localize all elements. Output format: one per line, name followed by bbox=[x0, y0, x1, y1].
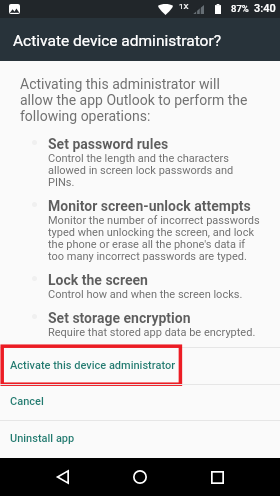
button[interactable]: Activate this device administrator bbox=[0, 348, 280, 384]
staticText: Control how and when the screen locks. bbox=[48, 288, 243, 300]
staticText: Monitor screen-unlock attempts bbox=[48, 196, 251, 214]
button[interactable]: Recent apps bbox=[197, 458, 238, 496]
staticText: Uninstall app bbox=[10, 432, 75, 445]
staticText: Set storage encryption bbox=[48, 308, 191, 326]
staticText: Lock the screen bbox=[48, 270, 148, 288]
staticText: Cancel bbox=[10, 395, 44, 408]
staticText: 1X bbox=[179, 2, 189, 11]
other: Screenshot captured bbox=[9, 4, 20, 14]
staticText: Monitor the number of incorrect password… bbox=[48, 214, 262, 262]
staticText: Require that stored app data be encrypte… bbox=[48, 326, 256, 338]
staticText: 87% bbox=[231, 3, 249, 14]
staticText: Activate device administrator? bbox=[13, 32, 221, 50]
staticText: Control the length and the characters al… bbox=[48, 152, 262, 188]
staticText: Set password rules bbox=[48, 134, 169, 152]
button[interactable]: Back bbox=[42, 458, 83, 496]
button[interactable]: Uninstall app bbox=[0, 421, 280, 458]
staticText: Activate this device administrator bbox=[10, 359, 176, 372]
button[interactable]: Cancel bbox=[0, 385, 280, 420]
staticText: Activating this administrator will allow… bbox=[20, 77, 251, 125]
button[interactable]: Home bbox=[119, 458, 160, 496]
staticText: 3:40 bbox=[254, 2, 276, 15]
